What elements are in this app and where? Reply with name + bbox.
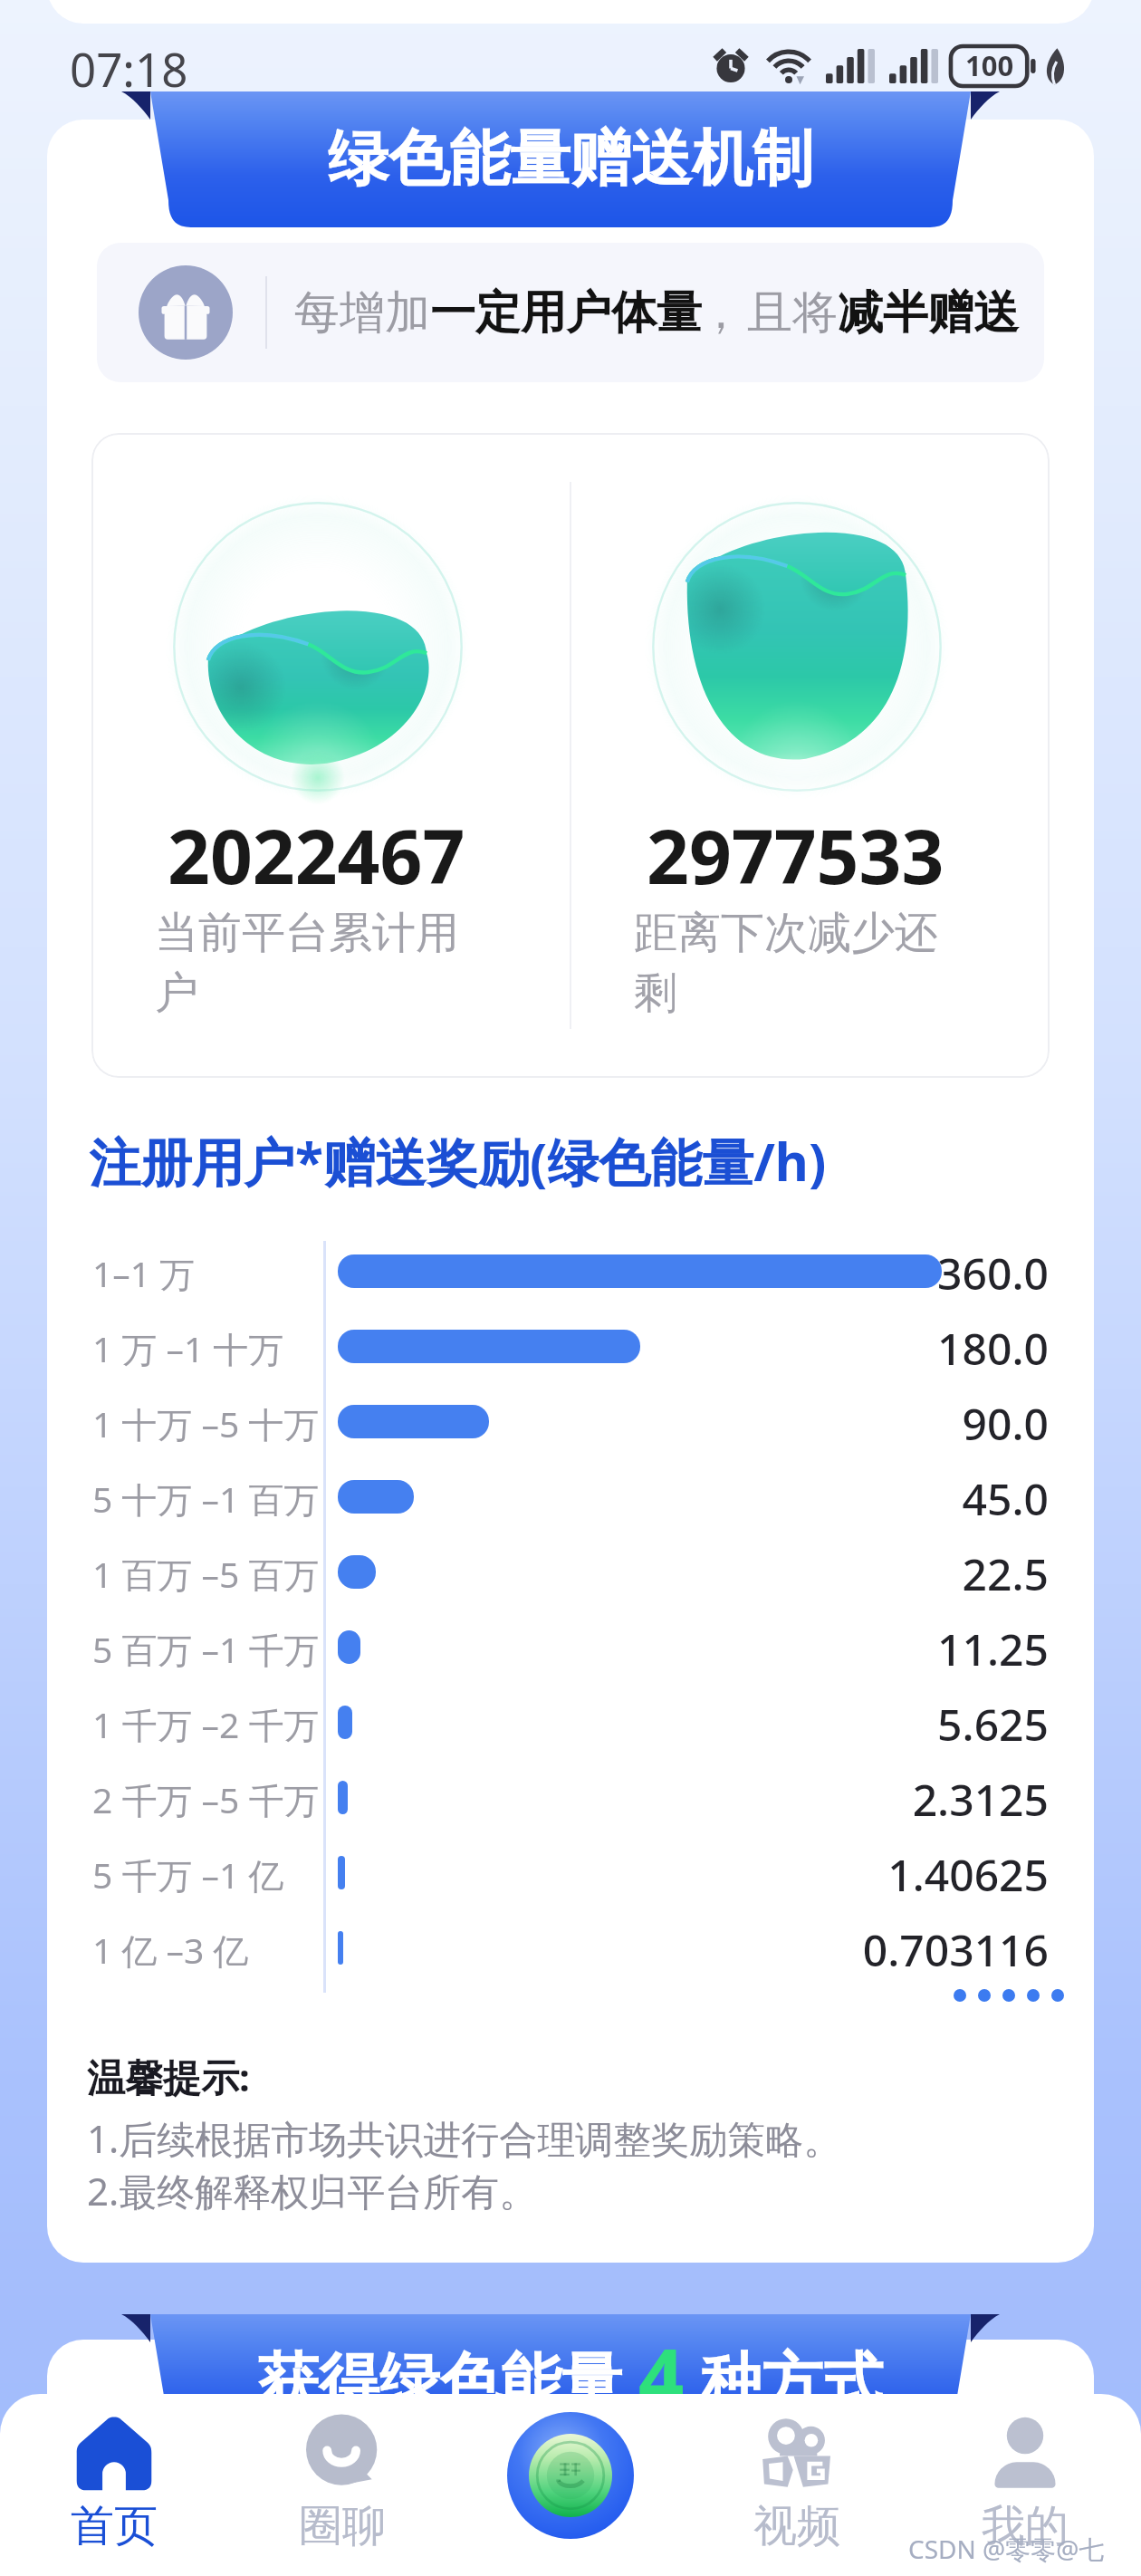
staticText: 种 [701,2343,762,2419]
staticText: 2.3125 [634,1770,1049,1829]
staticText: 2022467 [168,804,465,906]
staticText: 视频 [753,2499,840,2553]
staticText: 1 亿 –3 亿 [92,1926,249,1974]
staticText: ， [698,284,743,341]
staticText: 圈聊 [299,2499,386,2553]
button[interactable]: 首页 [33,2414,196,2553]
staticText: 1–1 万 [92,1249,196,1297]
staticText: 获 [258,2343,319,2419]
button[interactable]: 积分中心 [507,2412,634,2539]
staticText: 色 [440,2343,501,2419]
staticText: 1 万 –1 十万 [92,1324,284,1372]
staticText: 1.40625 [634,1845,1049,1904]
staticText: 当前平台累计用户 [155,906,474,1021]
staticText: 1 十万 –5 十万 [92,1399,320,1447]
staticText: 2.最终解释权归平台所有。 [87,2165,538,2216]
staticText: 距离下次减少还剩 [634,906,953,1021]
staticText: 22.5 [634,1544,1049,1603]
staticText: 5 百万 –1 千万 [92,1625,320,1673]
staticText: 1.后续根据市场共识进行合理调整奖励策略。 [87,2112,842,2164]
staticText: 2977533 [647,804,944,906]
staticText: 注册用户*赠送奖励(绿色能量/h) [89,1126,827,1197]
staticText [685,2341,701,2423]
staticText: 2 千万 –5 千万 [92,1775,320,1823]
staticText: 4 [638,2321,685,2430]
staticText: 式 [822,2343,883,2419]
staticText: CSDN @零零@七 [908,2532,1105,2566]
staticText: 绿 [379,2343,440,2419]
staticText: 且将 [747,284,838,341]
staticText: 360.0 [634,1244,1049,1302]
staticText: 11.25 [634,1620,1049,1678]
staticText: 5 十万 –1 百万 [92,1475,320,1523]
staticText: 1 千万 –2 千万 [92,1700,320,1748]
staticText: 我的 [982,2499,1069,2553]
staticText [622,2341,638,2423]
staticText: 100 [965,46,1014,84]
button[interactable]: 我的 [944,2414,1107,2553]
button[interactable]: 圈聊 [261,2414,424,2553]
staticText: 5.625 [634,1695,1049,1754]
staticText: 减半赠送 [838,284,1019,341]
staticText: 量 [561,2343,622,2419]
button[interactable]: 视频 [715,2414,878,2553]
staticText: 0.703116 [634,1920,1049,1979]
staticText: 90.0 [634,1394,1049,1453]
staticText: 07:18 [70,37,188,100]
staticText: 温馨提示: [87,2051,250,2102]
staticText: 1 百万 –5 百万 [92,1550,320,1598]
staticText: 绿色能量赠送机制 [328,120,813,197]
staticText: 能 [501,2343,561,2419]
staticText: 每增加 [294,284,430,341]
staticText: 得 [319,2343,379,2419]
staticText: 45.0 [634,1469,1049,1528]
staticText: 一定用户体量 [430,284,702,341]
button[interactable]: 每增加 [97,243,1044,382]
staticText: 5 千万 –1 亿 [92,1850,284,1898]
staticText: 180.0 [634,1319,1049,1378]
staticText: 首页 [71,2499,158,2553]
staticText: 方 [762,2343,822,2419]
